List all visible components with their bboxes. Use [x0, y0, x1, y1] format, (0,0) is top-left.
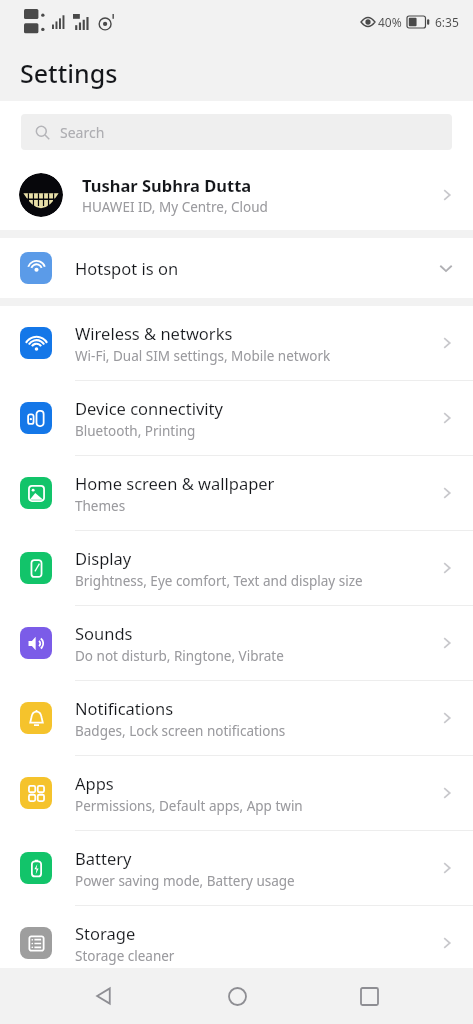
staticText: Search [60, 123, 105, 142]
staticText: Device connectivity [75, 397, 223, 419]
staticText: HUAWEI ID, My Centre, Cloud [82, 198, 268, 216]
button[interactable]: Back [76, 968, 132, 1024]
button[interactable]: Notifications [0, 681, 473, 755]
staticText: Wi-Fi, Dual SIM settings, Mobile network [75, 347, 331, 365]
button[interactable]: Device connectivity [0, 381, 473, 455]
staticText: Settings [20, 56, 118, 90]
staticText: Tushar Subhra Dutta [82, 174, 252, 196]
staticText: Brightness, Eye comfort, Text and displa… [75, 572, 363, 590]
staticText: Notifications [75, 697, 174, 719]
staticText: Apps [75, 772, 114, 794]
staticText: Permissions, Default apps, App twin [75, 797, 303, 815]
button[interactable]: Home [209, 968, 265, 1024]
staticText: Do not disturb, Ringtone, Vibrate [75, 647, 284, 665]
staticText: Storage [75, 922, 136, 944]
staticText: 6:35 [435, 14, 459, 30]
button[interactable]: Home screen & wallpaper [0, 456, 473, 530]
button[interactable]: Sounds [0, 606, 473, 680]
staticText: Wireless & networks [75, 322, 233, 344]
button[interactable]: Tushar Subhra Dutta [0, 164, 473, 225]
staticText: Sounds [75, 622, 133, 644]
button[interactable]: Search [21, 114, 452, 150]
staticText: Themes [75, 497, 126, 515]
staticText: Power saving mode, Battery usage [75, 872, 295, 890]
button[interactable]: Apps [0, 756, 473, 830]
staticText: Display [75, 547, 132, 569]
button[interactable]: Display [0, 531, 473, 605]
button[interactable]: Battery [0, 831, 473, 905]
button[interactable]: Storage [0, 906, 473, 980]
staticText: Bluetooth, Printing [75, 422, 196, 440]
staticText: Battery [75, 847, 132, 869]
button[interactable]: Hotspot is on [0, 238, 473, 298]
staticText: Hotspot is on [75, 257, 435, 279]
staticText: Badges, Lock screen notifications [75, 722, 286, 740]
staticText: 40% [378, 14, 402, 30]
button[interactable]: Recents [341, 968, 397, 1024]
button[interactable]: Wireless & networks [0, 306, 473, 380]
staticText: Storage cleaner [75, 947, 175, 965]
staticText: Home screen & wallpaper [75, 472, 275, 494]
